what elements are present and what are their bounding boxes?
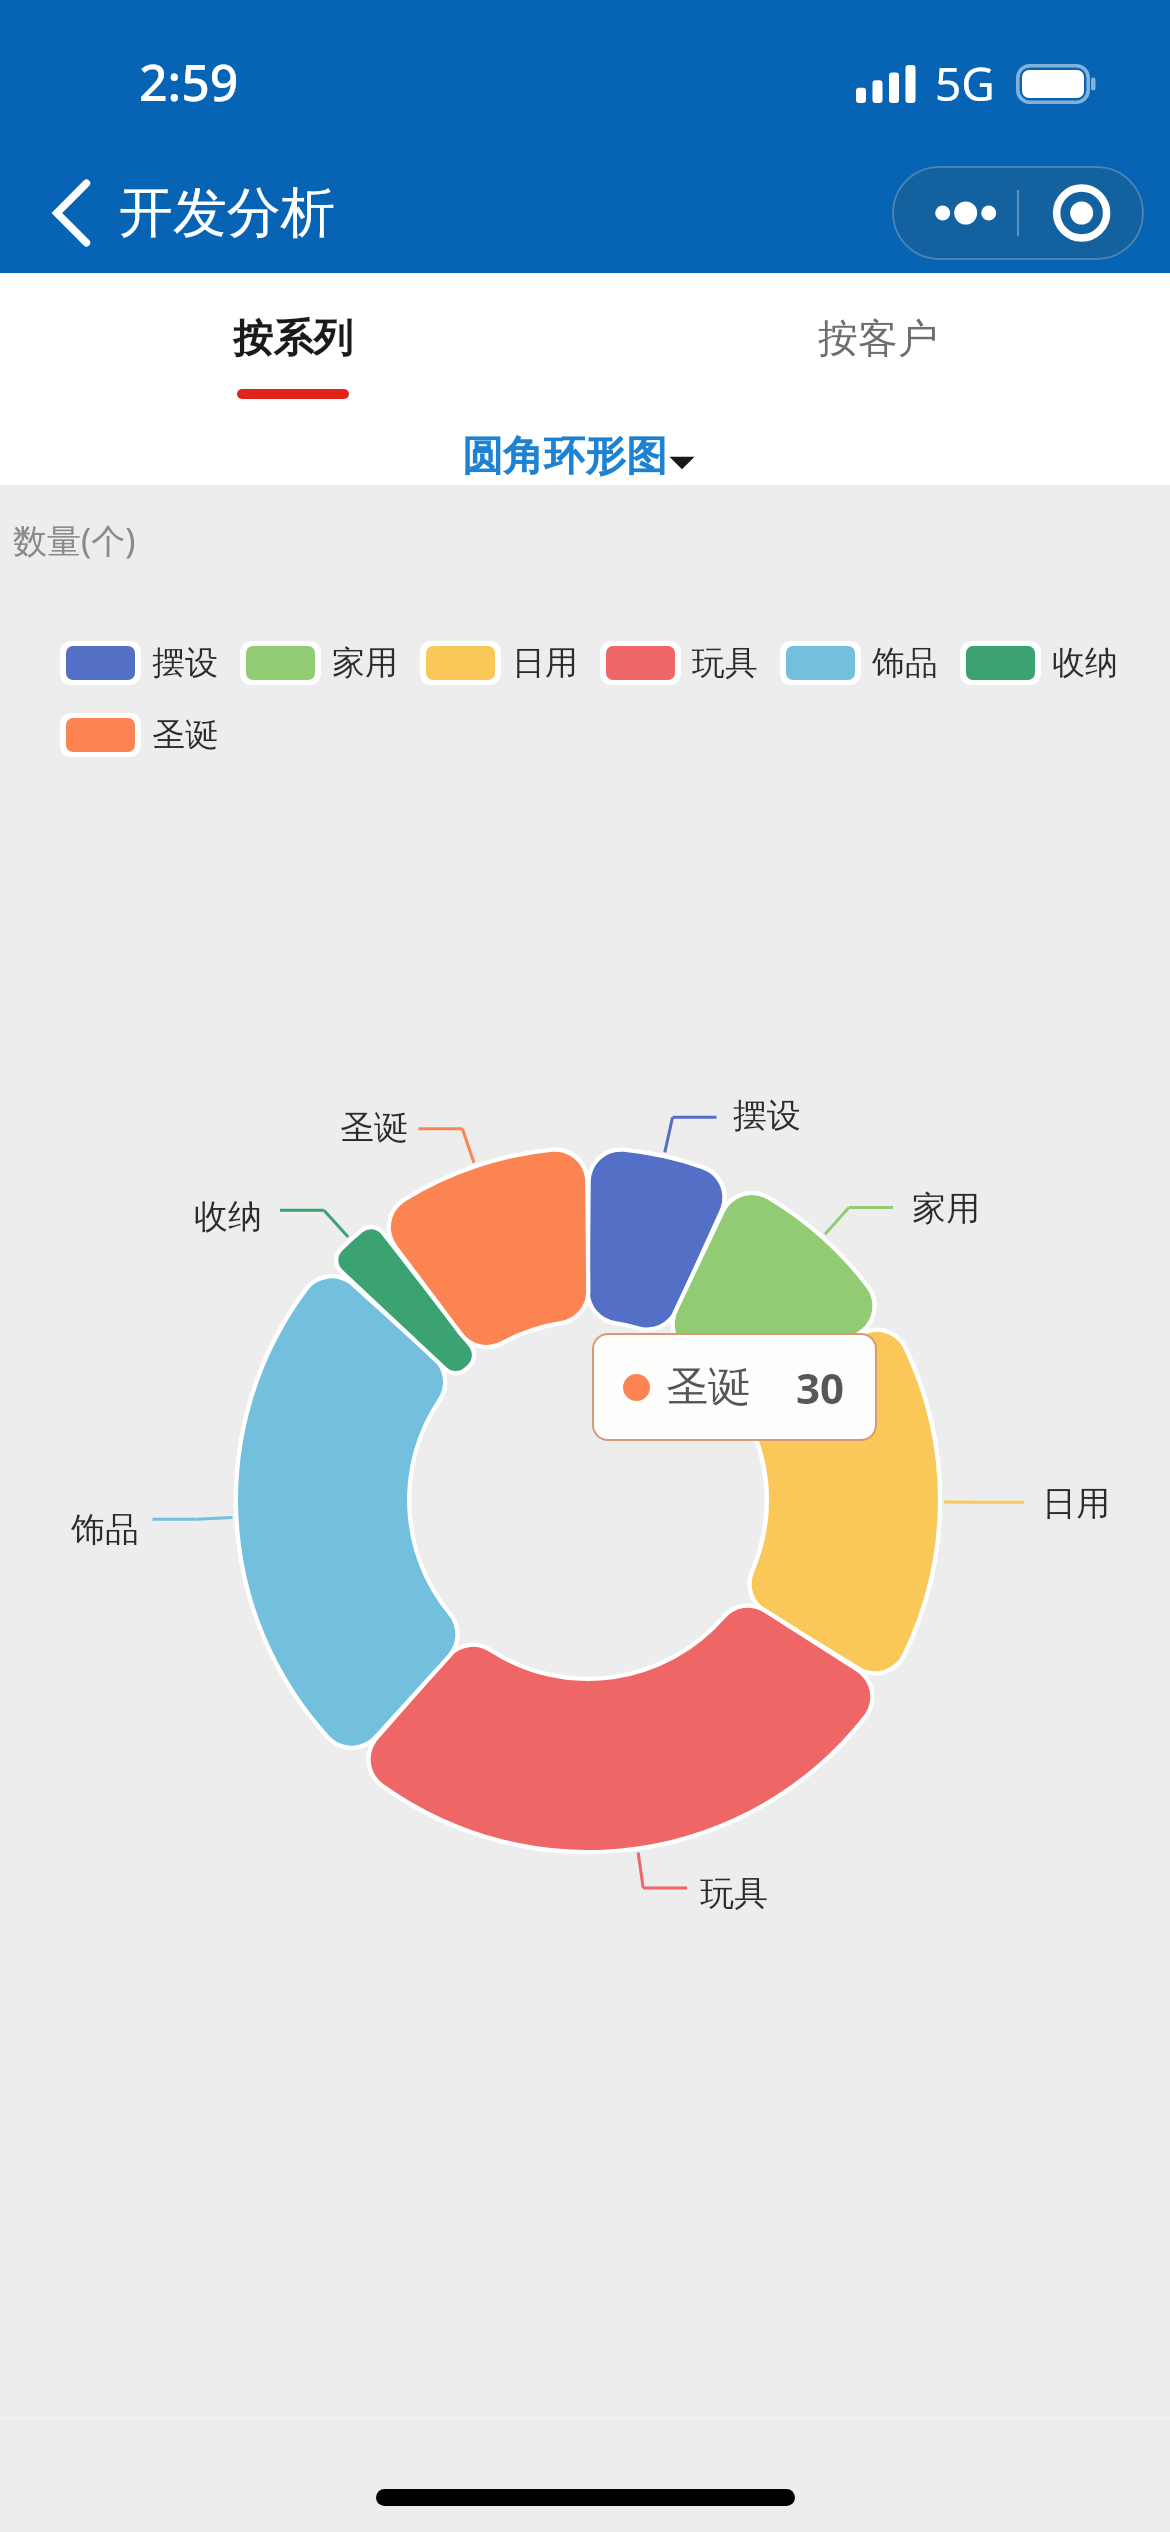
staticText: 收纳 — [1052, 642, 1118, 684]
staticText: 圣诞 — [340, 1106, 408, 1149]
staticText: 日用 — [512, 642, 578, 684]
button[interactable]: 饰品 — [780, 641, 938, 685]
staticText: 家用 — [912, 1187, 980, 1230]
button[interactable]: 摆设 — [60, 641, 218, 685]
staticText: 数量(个) — [13, 517, 136, 563]
staticText: 玩具 — [692, 642, 758, 684]
button[interactable]: 关闭 — [1018, 166, 1144, 260]
staticText: 开发分析 — [119, 179, 335, 247]
staticText: 圣诞 — [666, 1361, 750, 1414]
staticText: 家用 — [332, 642, 398, 684]
staticText: 饰品 — [71, 1508, 139, 1551]
button[interactable]: 日用 — [420, 641, 578, 685]
button[interactable]: 收纳 — [960, 641, 1118, 685]
button[interactable]: 按客户 — [585, 273, 1170, 423]
button[interactable]: 圣诞 — [60, 713, 218, 757]
staticText: 2:59 — [139, 48, 239, 116]
staticText: 30 — [796, 1359, 845, 1416]
button[interactable]: 家用 — [240, 641, 398, 685]
staticText: 按系列 — [233, 313, 353, 363]
button[interactable]: 按系列 — [0, 273, 585, 423]
staticText: 饰品 — [872, 642, 938, 684]
button[interactable]: 更多 — [892, 166, 1018, 260]
button[interactable]: 圣诞 — [594, 1335, 875, 1439]
staticText: 圣诞 — [152, 714, 218, 756]
staticText: 摆设 — [152, 642, 218, 684]
staticText: 圆角环形图 — [462, 431, 667, 483]
button[interactable]: 圆角环形图 — [462, 431, 697, 483]
staticText: 摆设 — [733, 1094, 801, 1137]
staticText: 5G — [935, 52, 995, 115]
staticText: 收纳 — [194, 1195, 262, 1238]
button[interactable]: 玩具 — [600, 641, 758, 685]
button[interactable]: 返回 — [29, 170, 115, 256]
staticText: 日用 — [1042, 1482, 1110, 1525]
staticText: 玩具 — [700, 1872, 768, 1915]
staticText: 按客户 — [818, 313, 938, 363]
